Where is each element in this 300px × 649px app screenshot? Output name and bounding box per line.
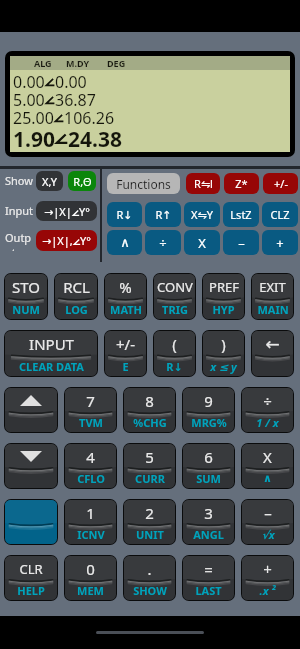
staticText: Y° bbox=[79, 204, 90, 219]
button[interactable]: R,Θ bbox=[68, 171, 96, 191]
staticText: ANGL bbox=[193, 527, 224, 542]
staticText: MEM bbox=[77, 583, 104, 598]
staticText: CLEAR DATA bbox=[19, 359, 84, 374]
staticText: M.DY bbox=[66, 57, 90, 69]
button[interactable]: – bbox=[223, 230, 259, 255]
button[interactable]: R⇋l bbox=[186, 173, 220, 194]
staticText: Y° bbox=[80, 233, 91, 248]
button[interactable]: + bbox=[262, 230, 298, 255]
staticText: ÷ bbox=[159, 234, 167, 252]
button[interactable]: CLR bbox=[5, 556, 57, 600]
button[interactable]: EXIT bbox=[252, 274, 293, 319]
button[interactable]: 3 bbox=[183, 500, 234, 544]
button[interactable]: Functions bbox=[107, 173, 180, 194]
button[interactable]: 0 bbox=[65, 556, 116, 600]
staticText: ICNV bbox=[77, 527, 105, 542]
button[interactable]: R↓ bbox=[107, 202, 142, 227]
button[interactable]: + bbox=[242, 556, 293, 600]
staticText: 0.00 bbox=[55, 71, 87, 89]
staticText: R↑ bbox=[155, 207, 172, 222]
staticText: RCL bbox=[63, 277, 90, 297]
button[interactable]: 7 bbox=[65, 388, 116, 432]
button[interactable]: ) bbox=[203, 331, 244, 376]
staticText: % bbox=[119, 277, 132, 297]
button[interactable]: – bbox=[242, 500, 293, 544]
button[interactable]: X bbox=[184, 230, 220, 255]
staticText: PREF bbox=[209, 278, 239, 296]
staticText: Input bbox=[5, 203, 34, 218]
staticText: UNIT bbox=[136, 527, 164, 542]
staticText: 7 bbox=[86, 391, 95, 411]
staticText: +/- bbox=[274, 176, 288, 191]
staticText: R,Θ bbox=[73, 174, 92, 189]
staticText: ∧ bbox=[263, 472, 272, 485]
button[interactable]: 1 bbox=[65, 500, 116, 544]
staticText: CURR bbox=[135, 471, 165, 486]
button[interactable]: Backspace bbox=[252, 331, 293, 376]
button[interactable]: X⇋Y bbox=[184, 202, 220, 227]
staticText: Z* bbox=[235, 176, 248, 191]
staticText: DEG bbox=[107, 57, 126, 69]
button[interactable]: 4 bbox=[65, 444, 116, 488]
staticText: 4 bbox=[86, 447, 95, 467]
staticText: →|X|, bbox=[42, 233, 73, 248]
button[interactable]: RCL bbox=[55, 274, 97, 319]
button[interactable]: +/- bbox=[263, 173, 298, 194]
button[interactable]: ÷ bbox=[242, 388, 293, 432]
button[interactable]: →|X|, bbox=[36, 230, 97, 251]
button[interactable]: 8 bbox=[124, 388, 175, 432]
button[interactable]: ÷ bbox=[145, 230, 181, 255]
staticText: + bbox=[263, 559, 272, 579]
button[interactable]: STO bbox=[5, 274, 47, 319]
staticText: ← bbox=[265, 334, 280, 354]
button[interactable]: LstZ bbox=[223, 202, 259, 227]
staticText: x ≤ y bbox=[210, 359, 237, 374]
staticText: →|X| bbox=[44, 204, 72, 219]
button[interactable]: Shift bbox=[5, 500, 57, 544]
staticText: HYP bbox=[212, 302, 235, 317]
staticText: 0.00 bbox=[13, 71, 45, 89]
staticText: 1.90 bbox=[13, 125, 55, 147]
button[interactable]: R↑ bbox=[145, 202, 181, 227]
button[interactable]: Scroll down bbox=[5, 444, 57, 488]
staticText: 6 bbox=[204, 447, 213, 467]
button[interactable]: CLZ bbox=[262, 202, 298, 227]
staticText: 5.00 bbox=[13, 89, 45, 107]
staticText: ÷ bbox=[263, 391, 272, 411]
button[interactable]: X bbox=[242, 444, 293, 488]
button[interactable]: 9 bbox=[183, 388, 234, 432]
staticText: X bbox=[263, 447, 272, 467]
button[interactable]: . bbox=[124, 556, 175, 600]
button[interactable]: X,Y bbox=[36, 171, 63, 191]
staticText: Show bbox=[5, 173, 33, 188]
staticText: X bbox=[198, 234, 206, 252]
staticText: Functions bbox=[116, 176, 171, 192]
staticText: – bbox=[264, 503, 272, 523]
staticText: ( bbox=[172, 334, 177, 354]
button[interactable]: 6 bbox=[183, 444, 234, 488]
button[interactable]: Z* bbox=[224, 173, 259, 194]
staticText: – bbox=[238, 234, 245, 252]
staticText: = bbox=[204, 559, 213, 579]
staticText: LAST bbox=[195, 583, 222, 598]
button[interactable]: INPUT bbox=[5, 331, 97, 376]
button[interactable]: % bbox=[105, 274, 146, 319]
staticText: CONV bbox=[157, 278, 193, 296]
button[interactable]: Scroll up bbox=[5, 388, 57, 432]
button[interactable]: ∧ bbox=[107, 230, 142, 255]
staticText: X,Y bbox=[42, 174, 57, 189]
button[interactable]: = bbox=[183, 556, 234, 600]
staticText: 5 bbox=[145, 447, 154, 467]
button[interactable]: ( bbox=[154, 331, 195, 376]
button[interactable]: +/- bbox=[105, 331, 146, 376]
staticText: LOG bbox=[65, 302, 88, 317]
button[interactable]: CONV bbox=[154, 274, 195, 319]
staticText: TVM bbox=[79, 415, 103, 430]
button[interactable]: 2 bbox=[124, 500, 175, 544]
button[interactable]: 5 bbox=[124, 444, 175, 488]
button[interactable]: PREF bbox=[203, 274, 244, 319]
staticText: CLZ bbox=[270, 207, 290, 222]
button[interactable]: →|X| bbox=[36, 201, 97, 221]
staticText: 25.00 bbox=[13, 107, 54, 125]
staticText: √x bbox=[261, 527, 275, 542]
